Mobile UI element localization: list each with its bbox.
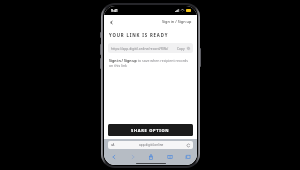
button[interactable]: Sign in / Sign up xyxy=(161,17,193,26)
staticText: app.digitil.online xyxy=(139,143,164,147)
button[interactable]: SHARE OPTION xyxy=(108,124,193,136)
staticText: Copy xyxy=(177,46,185,50)
button[interactable]: Share xyxy=(146,152,155,161)
staticText: https://app.digitil.online/record/f0fb/ xyxy=(111,46,177,50)
button[interactable]: Forward xyxy=(128,152,137,161)
other: Reload xyxy=(187,144,190,147)
button[interactable]: https://app.digitil.online/record/f0fb/ xyxy=(108,43,193,53)
staticText: 9:41 xyxy=(111,8,118,13)
button[interactable]: Back xyxy=(109,152,118,161)
button[interactable]: Back xyxy=(107,18,115,26)
button[interactable]: Tabs xyxy=(183,152,192,161)
button[interactable]: aA xyxy=(108,141,193,149)
staticText: Sign in / Sign up to save when recipient… xyxy=(109,58,192,68)
button[interactable]: Bookmarks xyxy=(165,152,174,161)
staticText: Sign in / Sign up xyxy=(162,19,192,24)
staticText: aA xyxy=(111,143,115,147)
staticText: YOUR LINK IS READY xyxy=(109,32,169,38)
staticText: SHARE OPTION xyxy=(131,128,170,133)
